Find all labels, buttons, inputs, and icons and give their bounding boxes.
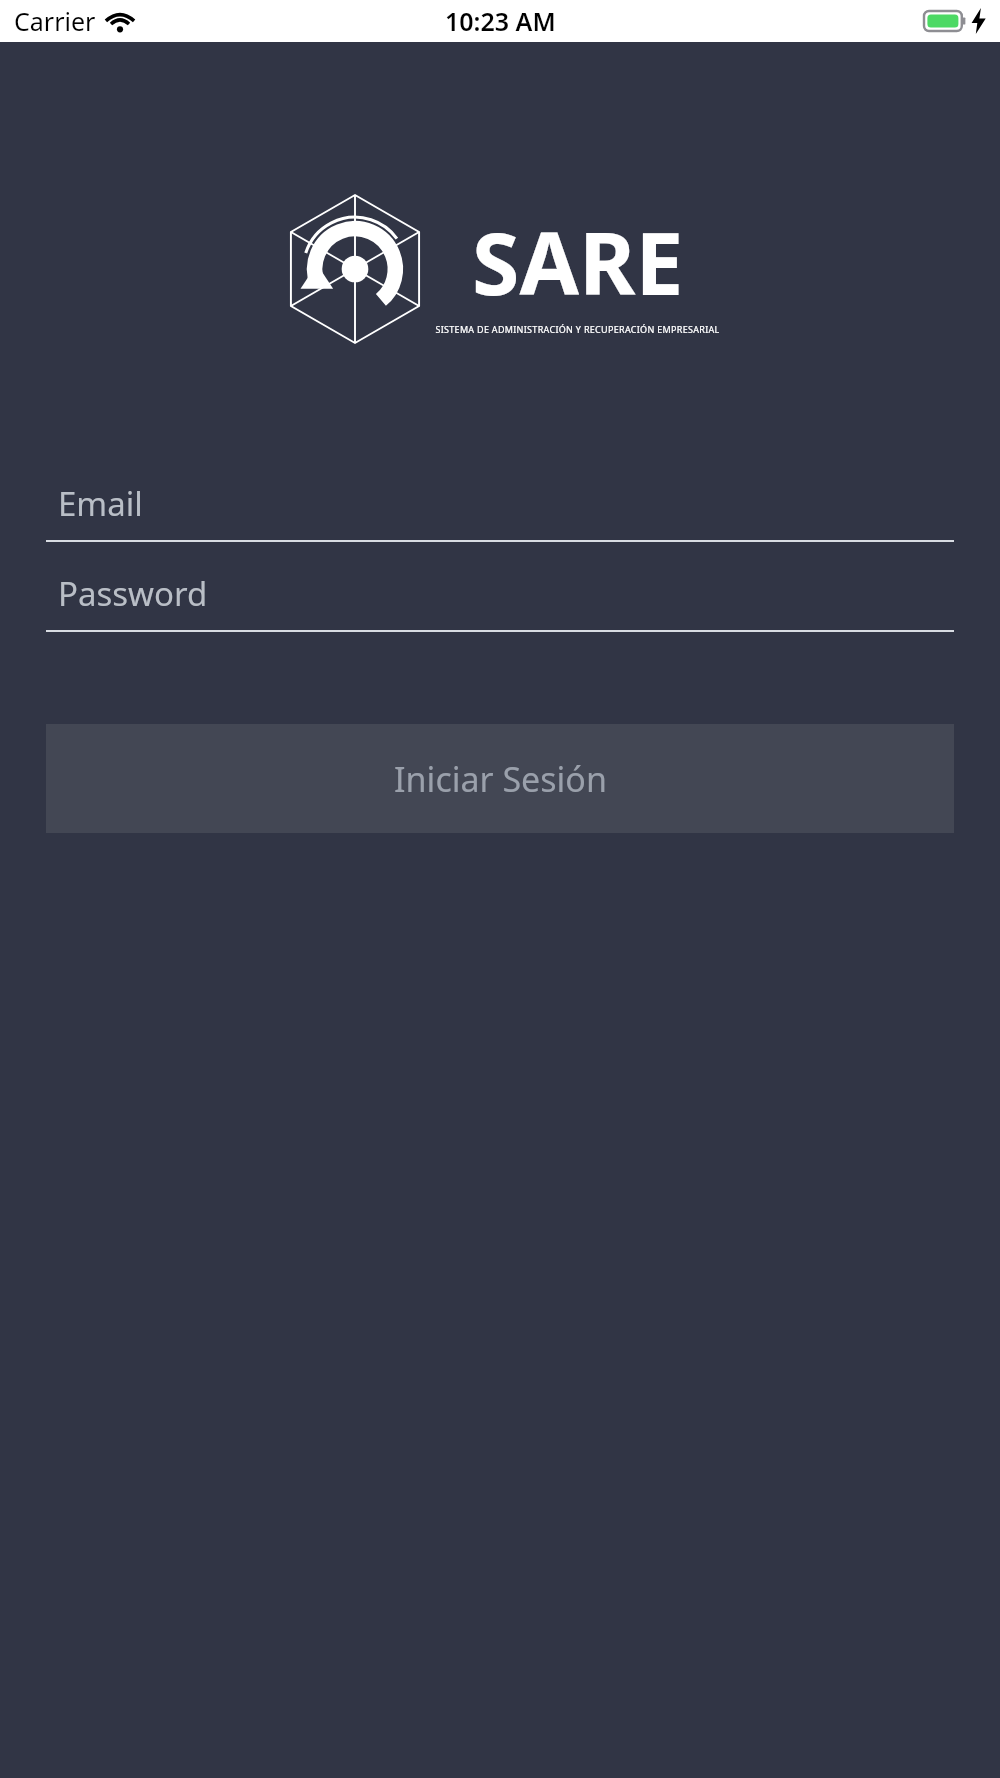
button[interactable]: Email (46, 466, 954, 542)
staticText: 10:23 AM (445, 4, 556, 38)
button[interactable]: Iniciar Sesión (46, 724, 954, 833)
staticText: SISTEMA DE ADMINISTRACIÓN Y RECUPERACIÓN… (435, 323, 720, 335)
other: Wi-Fi signal (105, 10, 135, 32)
staticText: SARE (472, 203, 684, 320)
staticText: Carrier (14, 4, 96, 38)
button[interactable]: Password (46, 556, 954, 632)
staticText: Iniciar Sesión (394, 756, 607, 802)
staticText: Email (58, 481, 143, 526)
other: Battery charging (924, 11, 966, 31)
staticText: Password (58, 571, 208, 616)
